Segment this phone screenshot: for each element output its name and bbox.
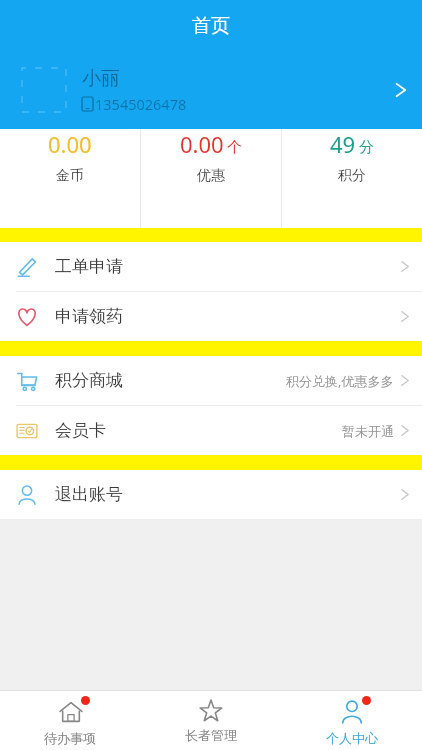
staticText: 分: [359, 138, 374, 157]
staticText: 个: [227, 138, 242, 157]
staticText: 金币: [56, 167, 84, 185]
button[interactable]: 退出账号: [0, 470, 422, 519]
button[interactable]: 待办事项: [0, 696, 140, 746]
button[interactable]: 积分商城: [0, 356, 422, 405]
button[interactable]: 申请领药: [0, 292, 422, 341]
staticText: 13545026478: [95, 94, 187, 114]
button[interactable]: 工单申请: [0, 242, 422, 291]
staticText: 0.00: [48, 129, 92, 159]
staticText: 0.00: [180, 129, 224, 159]
button[interactable]: 0.00: [0, 129, 140, 185]
staticText: 退出账号: [55, 484, 123, 505]
button[interactable]: 长者管理: [140, 698, 281, 743]
button[interactable]: 49: [282, 129, 422, 185]
button[interactable]: 小丽: [0, 51, 422, 129]
staticText: 长者管理: [185, 727, 237, 743]
staticText: 优惠: [197, 167, 225, 185]
staticText: 申请领药: [55, 306, 123, 327]
staticText: 积分兑换,优惠多多: [286, 372, 394, 390]
staticText: 积分: [338, 167, 366, 185]
button[interactable]: 0.00: [141, 129, 281, 185]
button[interactable]: 个人中心: [281, 696, 422, 746]
staticText: 首页: [192, 14, 230, 38]
staticText: 49: [330, 129, 356, 159]
staticText: 积分商城: [55, 370, 123, 391]
staticText: 个人中心: [326, 730, 378, 746]
staticText: 暂未开通: [342, 423, 394, 439]
staticText: 会员卡: [55, 420, 106, 441]
button[interactable]: 会员卡: [0, 406, 422, 455]
other: Profile details: [394, 78, 408, 102]
staticText: 工单申请: [55, 256, 123, 277]
staticText: 待办事项: [44, 730, 96, 746]
staticText: 小丽: [82, 67, 120, 91]
